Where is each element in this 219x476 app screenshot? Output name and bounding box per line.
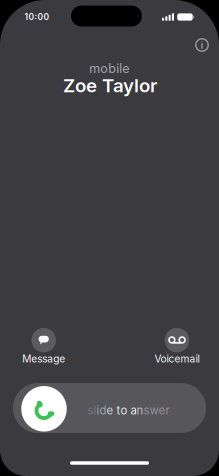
button[interactable]: Call information: [194, 37, 210, 53]
staticText: mobile: [89, 61, 129, 76]
staticText: 10:00: [24, 12, 49, 22]
staticText: swer: [143, 404, 169, 417]
staticText: id: [96, 404, 106, 417]
staticText: Zoe Taylor: [63, 74, 157, 97]
staticText: Voicemail: [154, 353, 199, 365]
staticText: e: [106, 404, 116, 417]
staticText: n: [136, 404, 143, 417]
staticText: sl: [87, 404, 96, 417]
button[interactable]: Message: [22, 328, 65, 365]
staticText: Message: [22, 353, 65, 365]
button[interactable]: Slide to answer: [13, 383, 206, 433]
staticText: to a: [116, 404, 136, 417]
button[interactable]: Voicemail: [154, 328, 199, 365]
